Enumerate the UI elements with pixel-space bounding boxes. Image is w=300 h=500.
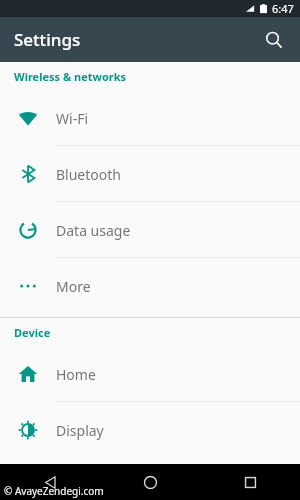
- staticText: Settings: [14, 28, 81, 51]
- staticText: More: [56, 277, 91, 296]
- staticText: Data usage: [56, 221, 131, 240]
- button[interactable]: Recents: [200, 464, 300, 500]
- staticText: Display: [56, 421, 104, 440]
- button[interactable]: Display: [0, 402, 300, 458]
- staticText: Device: [14, 325, 51, 340]
- button[interactable]: Back: [0, 464, 100, 500]
- staticText: 6:47: [272, 1, 294, 16]
- button[interactable]: Bluetooth: [0, 146, 300, 202]
- staticText: Wireless & networks: [14, 69, 127, 84]
- staticText: Wi-Fi: [56, 109, 89, 128]
- staticText: Home: [56, 365, 96, 384]
- button[interactable]: Search: [256, 22, 292, 58]
- staticText: Bluetooth: [56, 165, 121, 184]
- button[interactable]: Wi-Fi: [0, 90, 300, 146]
- staticText: © AvayeZendegi.com: [4, 484, 104, 498]
- button[interactable]: Home: [0, 346, 300, 402]
- button[interactable]: Home: [100, 464, 200, 500]
- button[interactable]: Data usage: [0, 202, 300, 258]
- button[interactable]: More: [0, 258, 300, 314]
